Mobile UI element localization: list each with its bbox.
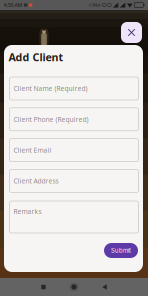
button[interactable]: Back xyxy=(89,278,119,296)
staticText: Client Email xyxy=(13,146,51,155)
staticText: 4:36 AM xyxy=(3,1,22,9)
button[interactable]: Submit xyxy=(104,243,138,258)
staticText: Add Client xyxy=(8,50,63,64)
staticText: Submit xyxy=(111,247,131,254)
button[interactable]: Client Address xyxy=(9,169,138,192)
staticText: Client Address xyxy=(13,176,58,185)
staticText: Client Phone (Required) xyxy=(13,115,88,124)
button[interactable]: Home xyxy=(59,278,89,296)
staticText: 6.9Kb/s xyxy=(89,2,101,8)
button[interactable]: Remarks xyxy=(9,201,138,233)
button[interactable]: Recent apps xyxy=(28,278,58,296)
button[interactable]: Client Phone (Required) xyxy=(9,108,138,131)
staticText: Client Name (Required) xyxy=(13,84,87,93)
button[interactable]: Close xyxy=(121,22,142,43)
button[interactable]: Client Email xyxy=(9,139,138,162)
button[interactable]: Client Name (Required) xyxy=(9,77,138,100)
staticText: Remarks xyxy=(13,207,41,216)
